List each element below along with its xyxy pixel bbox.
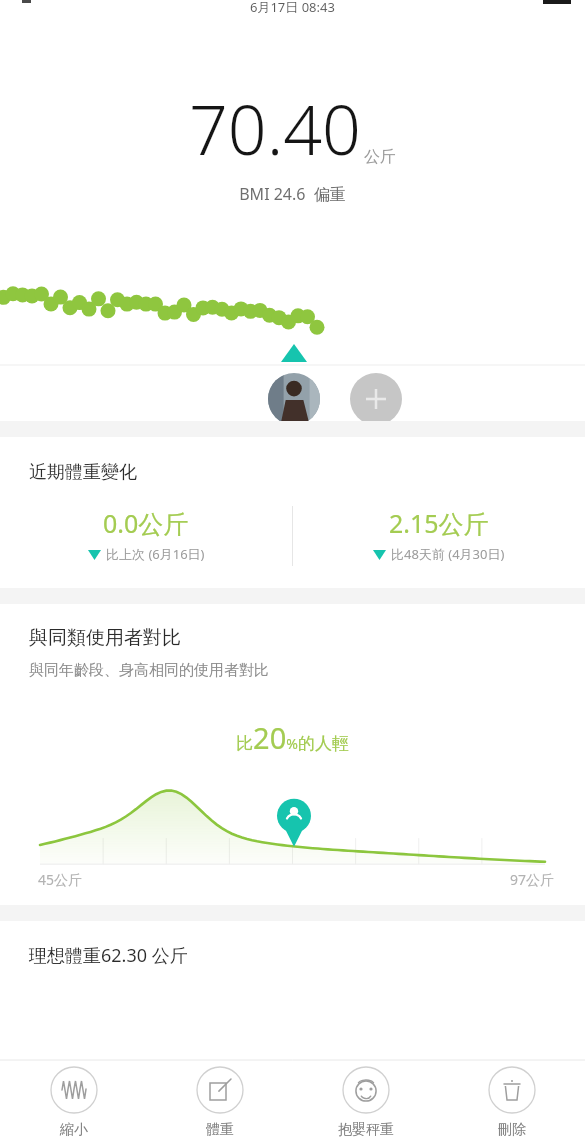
staticText: 比48天前 (4月30日) [391,545,505,563]
button[interactable]: Add user [350,373,402,425]
button[interactable]: 0.0公斤 [0,506,292,563]
button[interactable]: User profile [268,373,320,425]
staticText: 縮小 [60,1121,88,1139]
staticText: 近期體重變化 [29,461,137,484]
button[interactable]: 刪除 [439,1060,585,1139]
button[interactable]: 抱嬰秤重 [293,1060,439,1139]
staticText: 體重 [206,1121,234,1139]
staticText: BMI 24.6 偏重 [0,183,585,205]
button[interactable]: 體重 [147,1060,293,1139]
staticText: 比20%的人輕 [0,718,585,757]
staticText: 6月17日 08:43 [250,0,335,16]
staticText: 抱嬰秤重 [338,1121,394,1139]
staticText: 與同類使用者對比 [29,626,181,650]
staticText: 理想體重62.30 公斤 [29,943,188,968]
staticText: 45公斤 [38,870,83,889]
staticText: 比上次 (6月16日) [106,545,205,563]
button[interactable]: 縮小 [0,1060,147,1139]
button[interactable]: 2.15公斤 [293,506,585,563]
staticText: 70.40 [189,82,361,175]
staticText: 2.15公斤 [389,506,489,540]
staticText: 與同年齡段、身高相同的使用者對比 [29,661,269,680]
staticText: 公斤 [364,147,396,167]
staticText: 0.0公斤 [103,506,189,540]
staticText: 刪除 [498,1121,526,1139]
staticText: 97公斤 [510,870,555,889]
